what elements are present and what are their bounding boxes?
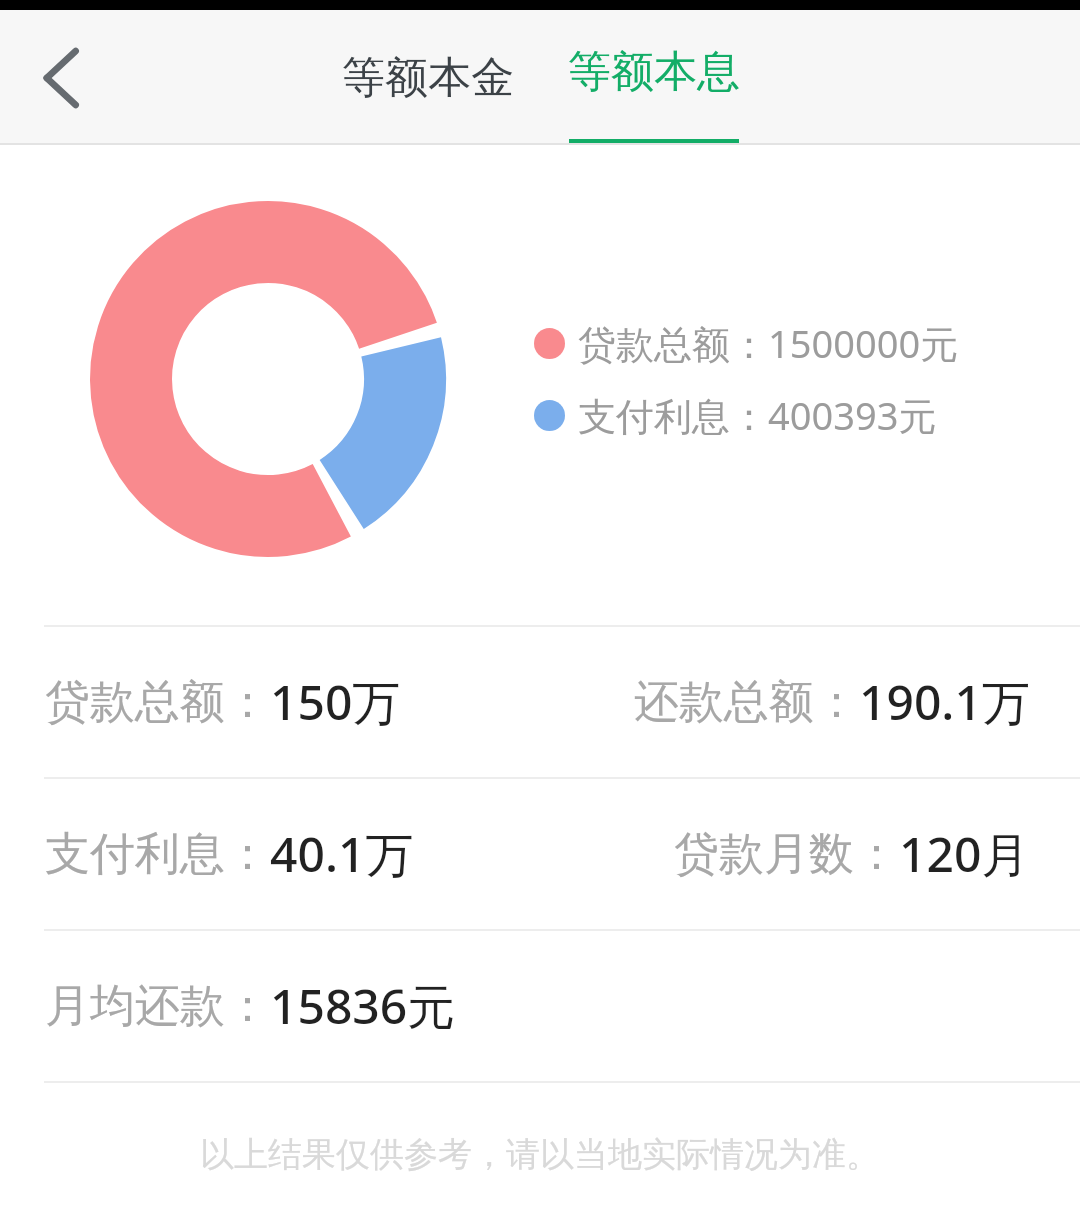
staticText: 支付利息：400393元 [578,389,937,441]
staticText: 15836元 [270,973,456,1039]
button[interactable]: 贷款总额： [45,669,401,735]
staticText: 150万 [270,669,401,735]
staticText: 月均还款： [45,978,270,1035]
staticText: 40.1万 [270,821,414,887]
staticText: 贷款总额：1500000元 [578,317,959,369]
staticText: 190.1万 [859,669,1030,735]
button[interactable]: 支付利息： [45,821,414,887]
staticText: 贷款月数： [674,826,899,883]
staticText: 支付利息： [45,826,270,883]
button[interactable]: 贷款月数： [674,821,1030,887]
button[interactable]: 等额本息 [551,10,757,145]
staticText: 以上结果仅供参考，请以当地实际情况为准。 [0,1133,1080,1176]
staticText: 还款总额： [634,674,859,731]
staticText: 贷款总额： [45,674,270,731]
button[interactable]: 月均还款： [45,973,456,1039]
staticText: 等额本息 [568,45,740,99]
button[interactable]: 还款总额： [634,669,1030,735]
staticText: 等额本金 [342,51,514,105]
button[interactable]: 等额本金 [325,10,531,145]
button[interactable]: Back [4,33,94,123]
staticText: 120月 [899,821,1030,887]
